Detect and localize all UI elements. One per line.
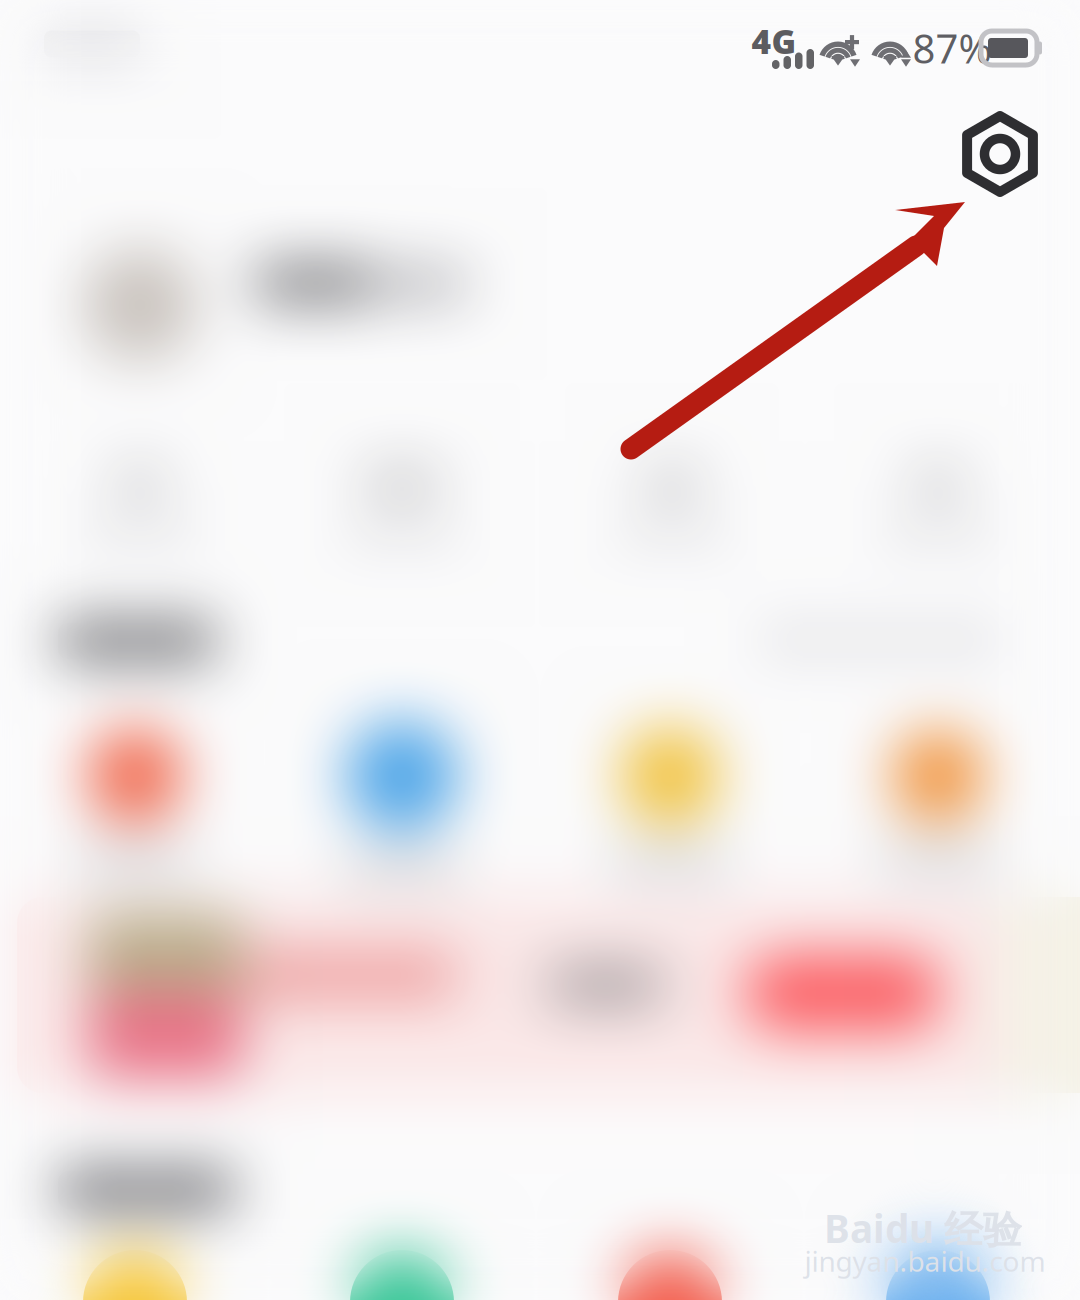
staticText: 4G	[751, 19, 796, 63]
staticText: 87%	[912, 21, 991, 74]
staticText: jingyan.baidu.com	[804, 1242, 1045, 1280]
staticText: Baidu 经验	[824, 1202, 1022, 1254]
button[interactable]: Settings	[936, 95, 1064, 213]
